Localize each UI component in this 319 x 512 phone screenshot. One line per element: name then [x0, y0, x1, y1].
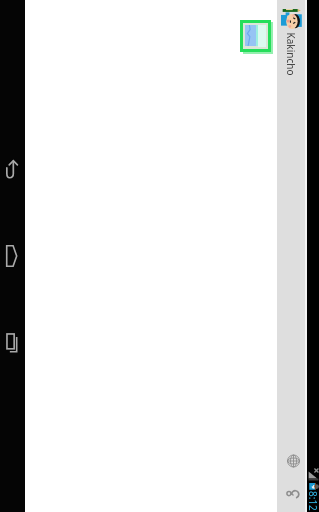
button[interactable]: Search — [282, 484, 306, 508]
button[interactable]: Back — [0, 157, 24, 181]
button[interactable]: Photo thumbnail — [245, 25, 266, 47]
button[interactable]: Recent apps — [0, 330, 24, 354]
staticText: 8:12 — [308, 491, 319, 511]
button[interactable]: Account — [281, 8, 302, 29]
button[interactable]: Home — [0, 244, 24, 268]
button[interactable]: Language — [282, 449, 306, 473]
staticText: Kakincho — [283, 32, 297, 75]
